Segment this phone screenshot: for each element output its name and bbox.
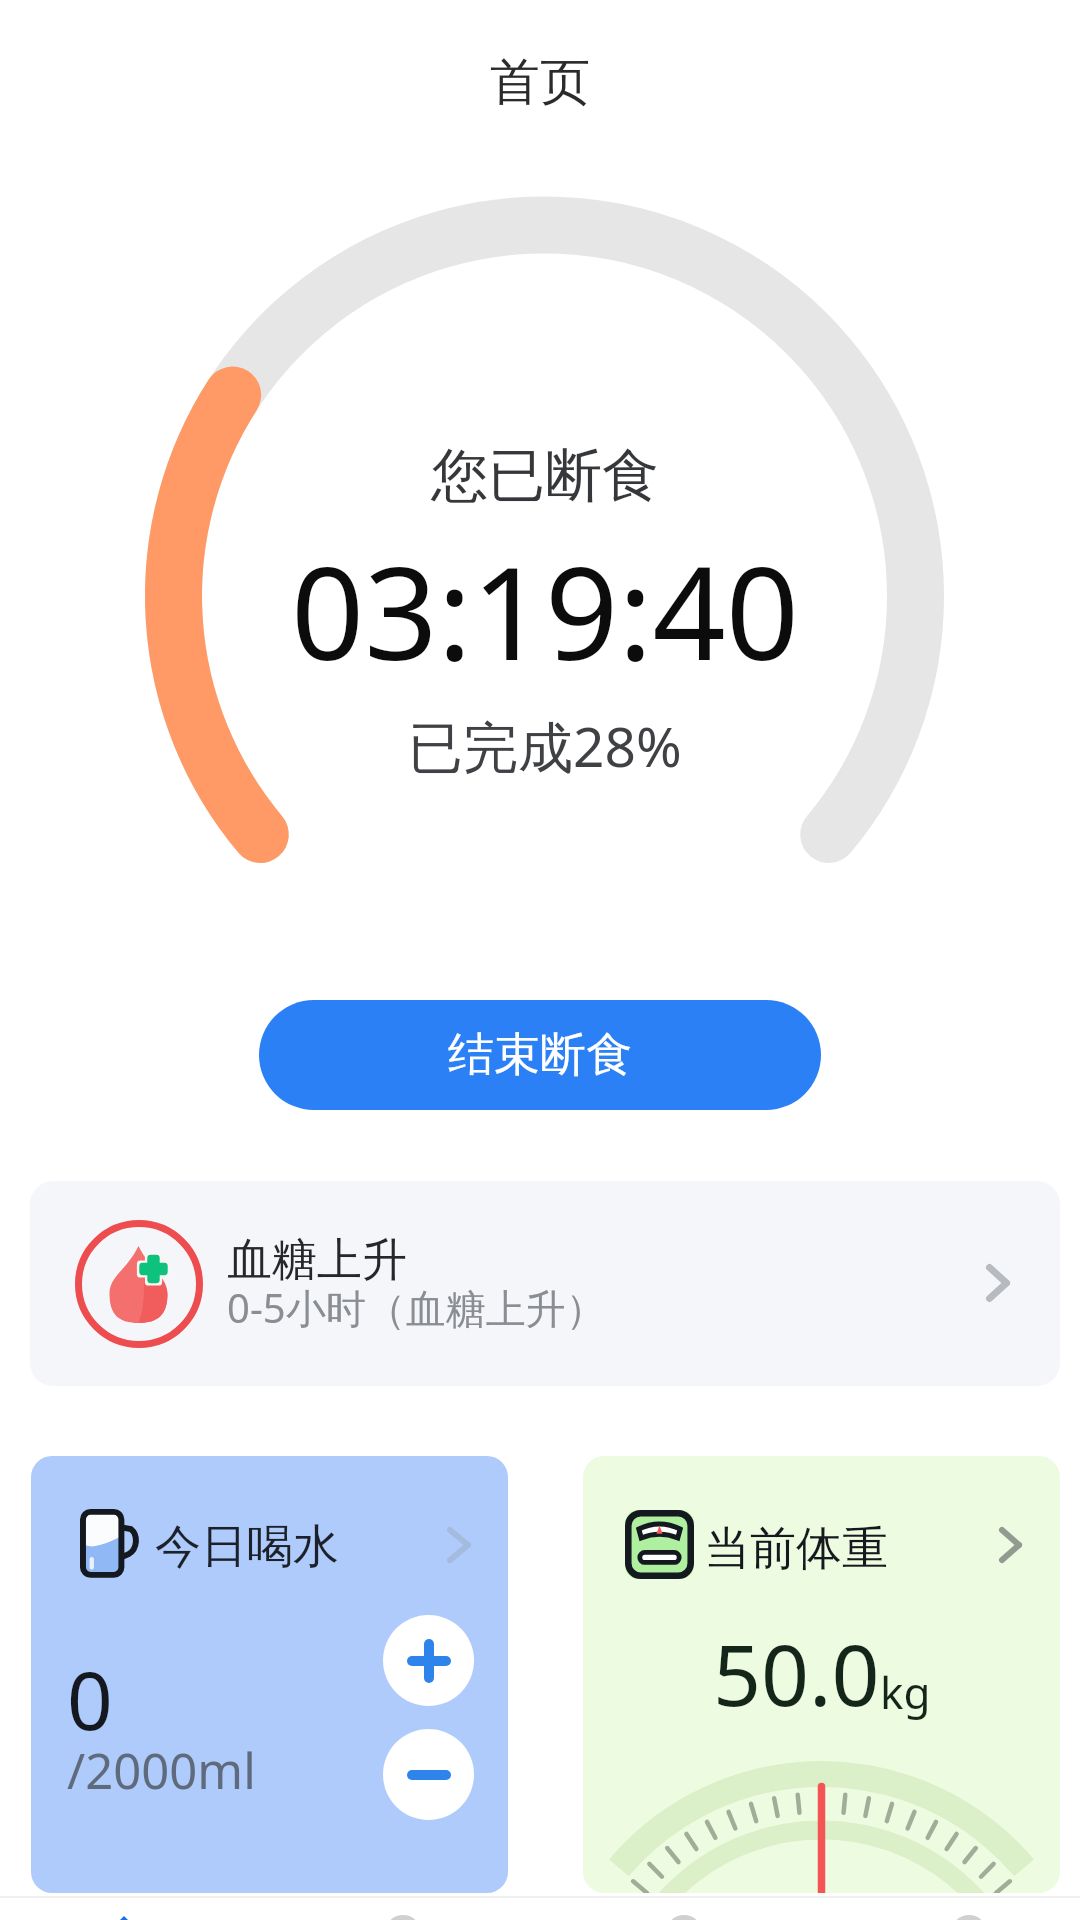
button[interactable]: Remove water xyxy=(383,1729,474,1820)
button[interactable]: 当前体重 xyxy=(583,1456,1060,1893)
staticText: 当前体重 xyxy=(704,1520,888,1578)
staticText: 50.0 xyxy=(713,1616,880,1730)
staticText: 首页 xyxy=(490,51,590,114)
button[interactable]: 统计 xyxy=(540,1898,810,1920)
button[interactable]: 血糖上升 xyxy=(30,1181,1060,1386)
staticText: 0-5小时（血糖上升） xyxy=(227,1280,606,1335)
button[interactable]: 首页 xyxy=(0,1898,270,1920)
button[interactable]: Add water xyxy=(383,1615,474,1706)
staticText: 今日喝水 xyxy=(155,1518,339,1576)
staticText: 0 xyxy=(67,1644,113,1753)
staticText: /2000ml xyxy=(67,1737,256,1804)
button[interactable]: 今日喝水 xyxy=(31,1456,508,1893)
button[interactable]: 首页 xyxy=(0,0,1080,160)
staticText: 已完成28% xyxy=(408,708,682,783)
staticText: 结束断食 xyxy=(448,1026,632,1084)
staticText: 03:19:40 xyxy=(291,523,799,697)
staticText: 血糖上升 xyxy=(227,1232,407,1289)
button[interactable]: 计划 xyxy=(270,1898,540,1920)
staticText: kg xyxy=(880,1662,931,1722)
button[interactable]: 我的 xyxy=(810,1898,1080,1920)
staticText: 您已断食 xyxy=(431,440,659,512)
button[interactable]: 结束断食 xyxy=(259,1000,821,1110)
